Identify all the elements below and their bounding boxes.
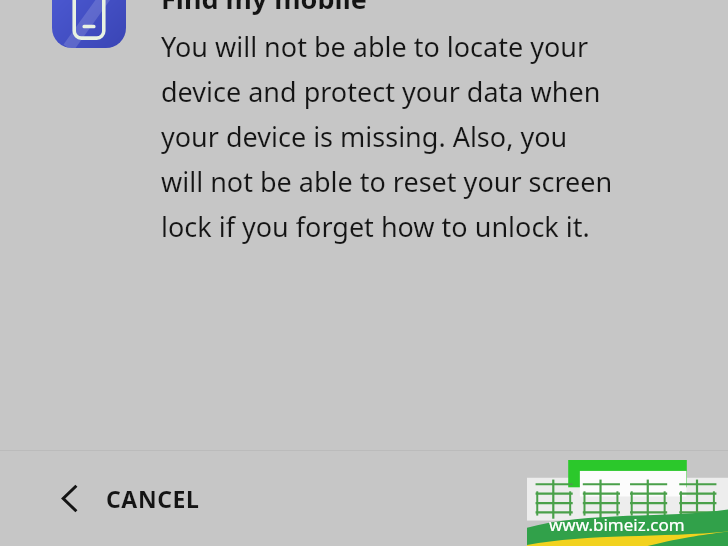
staticText: your device is missing. Also, you [161,118,568,155]
staticText: Find my mobile [161,0,367,17]
staticText: device and protect your data when [161,73,601,110]
staticText: www.bimeiz.com [549,513,685,536]
staticText: will not be able to reset your screen [161,163,613,200]
staticText: You will not be able to locate your [161,28,589,65]
button[interactable]: Back [0,451,226,546]
other: Back [60,484,80,513]
staticText: CANCEL [106,483,200,514]
staticText: lock if you forget how to unlock it. [161,208,590,245]
